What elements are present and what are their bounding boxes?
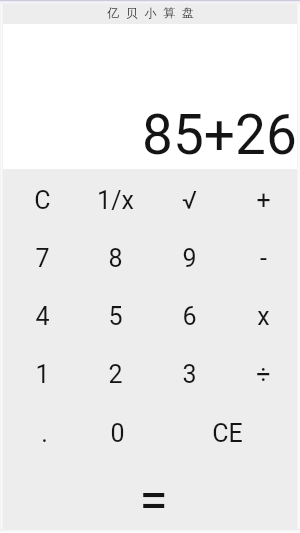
- staticText: 亿贝小算盘: [104, 5, 197, 20]
- button[interactable]: √: [152, 171, 226, 229]
- staticText: 6: [182, 302, 197, 331]
- button[interactable]: 9: [152, 229, 226, 287]
- button[interactable]: Equals: [6, 467, 300, 533]
- staticText: C: [34, 186, 51, 215]
- staticText: 1/x: [97, 186, 134, 215]
- staticText: 8: [108, 244, 123, 273]
- staticText: 1: [35, 360, 50, 389]
- staticText: √: [182, 186, 197, 215]
- staticText: 85+26: [142, 103, 297, 167]
- button[interactable]: .: [8, 405, 81, 461]
- button[interactable]: x: [226, 287, 300, 345]
- button[interactable]: ÷: [226, 345, 300, 403]
- staticText: 0: [110, 419, 125, 448]
- staticText: 2: [108, 360, 123, 389]
- staticText: 9: [182, 244, 197, 273]
- staticText: =: [139, 470, 168, 531]
- staticText: 4: [35, 302, 50, 331]
- button[interactable]: -: [226, 229, 300, 287]
- staticText: CE: [212, 419, 243, 448]
- staticText: x: [257, 302, 270, 331]
- staticText: 7: [35, 244, 50, 273]
- staticText: .: [41, 419, 48, 448]
- button[interactable]: 6: [152, 287, 226, 345]
- staticText: ÷: [256, 360, 271, 389]
- staticText: -: [260, 244, 267, 273]
- button[interactable]: 0: [81, 405, 154, 461]
- button[interactable]: 1: [6, 345, 79, 403]
- staticText: +: [256, 186, 271, 215]
- button[interactable]: 7: [6, 229, 79, 287]
- button[interactable]: 4: [6, 287, 79, 345]
- button[interactable]: 2: [79, 345, 152, 403]
- button[interactable]: 3: [152, 345, 226, 403]
- button[interactable]: 5: [79, 287, 152, 345]
- button[interactable]: 8: [79, 229, 152, 287]
- staticText: 3: [182, 360, 197, 389]
- button[interactable]: CE: [154, 405, 300, 461]
- button[interactable]: 1/x: [79, 171, 152, 229]
- button[interactable]: +: [226, 171, 300, 229]
- button[interactable]: C: [6, 171, 79, 229]
- staticText: 5: [108, 302, 123, 331]
